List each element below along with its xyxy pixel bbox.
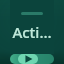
button[interactable]: Start run xyxy=(10,54,54,64)
staticText: Activity xyxy=(10,22,54,42)
